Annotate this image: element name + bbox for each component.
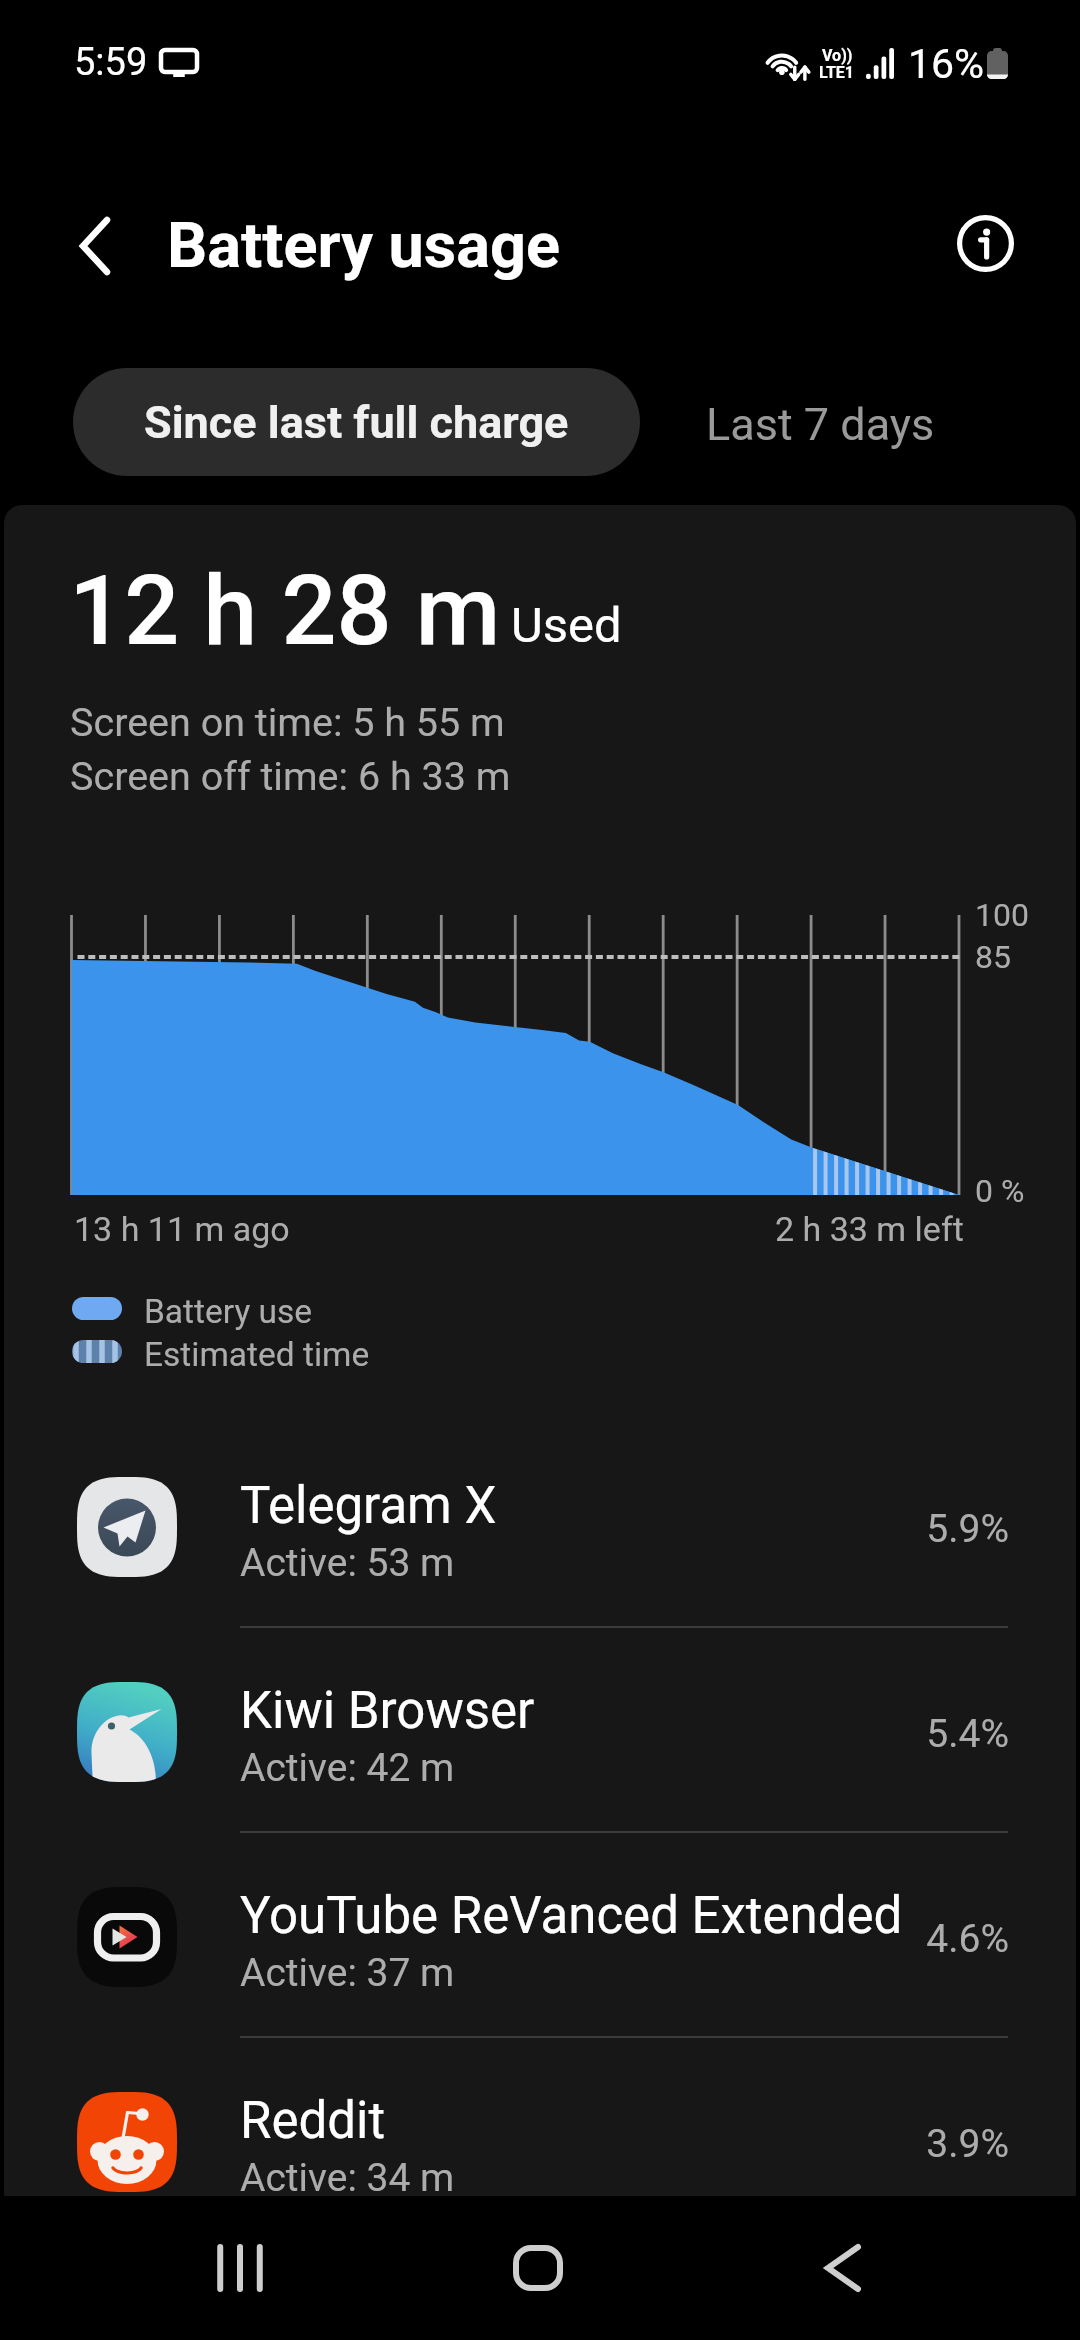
staticText: 5.4%: [790, 1711, 1009, 1757]
button[interactable]: Information: [934, 192, 1036, 294]
staticText: YouTube ReVanced Extended: [240, 1886, 903, 1946]
staticText: 5.9%: [790, 1506, 1009, 1552]
staticText: Reddit: [240, 2091, 386, 2151]
button[interactable]: Home: [458, 2196, 618, 2340]
staticText: Active: 34 m: [240, 2155, 455, 2201]
staticText: Telegram X: [240, 1476, 497, 1536]
staticText: Battery usage: [167, 209, 560, 283]
staticText: Since last full charge: [144, 396, 569, 449]
button[interactable]: Since last full charge: [73, 368, 640, 476]
staticText: 2 h 33 m left: [775, 1209, 964, 1249]
staticText: Active: 42 m: [240, 1745, 455, 1791]
staticText: Screen on time: 5 h 55 m: [70, 699, 505, 745]
button[interactable]: Back: [763, 2196, 923, 2340]
button[interactable]: [4, 1629, 1076, 1834]
button[interactable]: Recent apps: [160, 2196, 320, 2340]
staticText: Vo)): [822, 46, 853, 65]
staticText: Screen off time: 6 h 33 m: [70, 753, 511, 799]
staticText: 100: [975, 896, 1029, 934]
staticText: 3.9%: [790, 2121, 1009, 2167]
staticText: 5:59: [74, 40, 148, 85]
staticText: 0 %: [975, 1172, 1025, 1210]
button[interactable]: [4, 1424, 1076, 1629]
staticText: Last 7 days: [706, 398, 935, 451]
staticText: LTE1: [819, 63, 854, 82]
staticText: Active: 37 m: [240, 1950, 455, 1996]
staticText: 4.6%: [790, 1916, 1009, 1962]
staticText: 85: [975, 938, 1011, 976]
staticText: Active: 53 m: [240, 1540, 455, 1586]
button[interactable]: [4, 2039, 1076, 2244]
button[interactable]: Navigate up: [44, 195, 146, 297]
button[interactable]: Last 7 days: [638, 370, 1003, 478]
button[interactable]: [4, 1834, 1076, 2039]
staticText: Estimated time: [144, 1335, 370, 1374]
staticText: 13 h 11 m ago: [74, 1209, 290, 1249]
staticText: Battery use: [144, 1292, 313, 1331]
staticText: 12 h 28 m: [69, 554, 501, 668]
staticText: Kiwi Browser: [240, 1681, 535, 1741]
staticText: 16%: [908, 40, 985, 88]
staticText: Used: [511, 597, 622, 654]
